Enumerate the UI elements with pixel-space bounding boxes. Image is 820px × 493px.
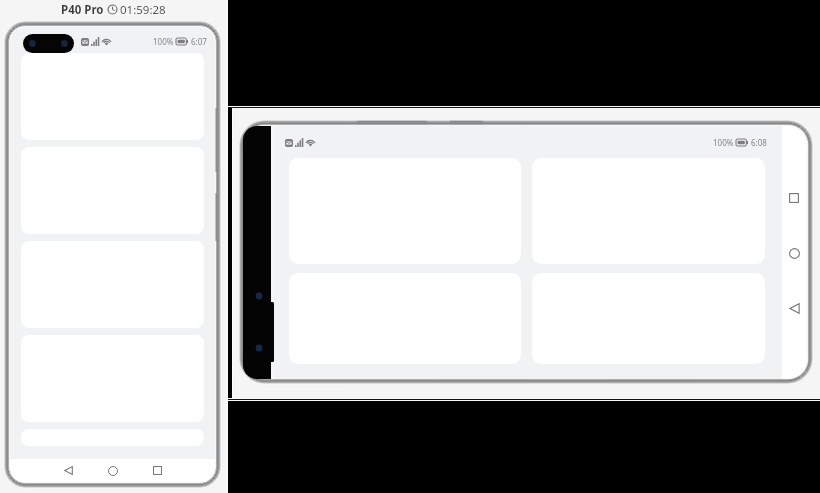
staticText: 100% [713,137,734,148]
button[interactable]: Recents [145,459,169,482]
staticText: 100% [153,36,174,47]
staticText: 6:08 [751,137,767,148]
button[interactable]: Back [56,459,80,482]
staticText: P40 Pro [61,2,104,18]
button[interactable]: Home [101,459,125,482]
button[interactable]: Recents [782,186,806,210]
staticText: 01:59:28 [120,2,166,18]
button[interactable]: Back [782,296,806,320]
button[interactable]: Home [782,241,806,265]
staticText: 6:07 [191,36,207,47]
